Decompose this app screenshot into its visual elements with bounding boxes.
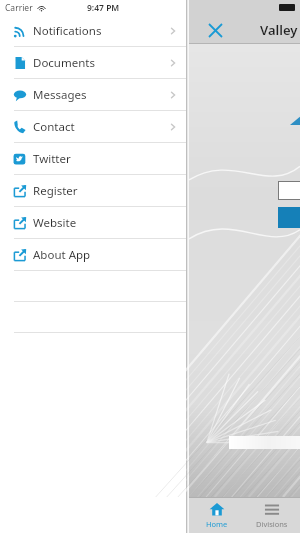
button[interactable]: Twitter — [0, 143, 186, 175]
button[interactable]: Register — [0, 175, 186, 207]
button[interactable]: Contact — [0, 111, 186, 143]
staticText: Documents — [33, 55, 95, 71]
button[interactable]: Close menu — [205, 20, 225, 40]
button[interactable]: Divisions — [244, 497, 300, 533]
button[interactable]: Documents — [0, 47, 186, 79]
staticText: Contact — [33, 119, 75, 135]
staticText: Twitter — [33, 151, 71, 167]
staticText: Website — [33, 215, 77, 231]
staticText: Register — [33, 183, 78, 199]
button[interactable]: About App — [0, 239, 186, 271]
staticText: 9:47 PM — [87, 2, 120, 14]
staticText: About App — [33, 247, 91, 263]
button[interactable]: Notifications — [0, 15, 186, 47]
staticText: Home — [206, 519, 228, 529]
staticText: Messages — [33, 87, 87, 103]
button[interactable]: Messages — [0, 79, 186, 111]
staticText: Valley — [260, 21, 298, 39]
staticText: Notifications — [33, 23, 102, 39]
staticText: Carrier — [5, 2, 33, 14]
staticText: Divisions — [256, 519, 288, 529]
button[interactable]: Website — [0, 207, 186, 239]
button[interactable]: Home — [189, 497, 244, 533]
